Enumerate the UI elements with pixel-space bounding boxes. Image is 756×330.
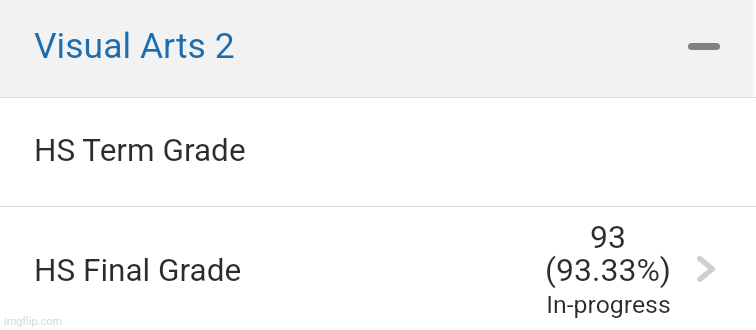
button[interactable]: HS Final Grade (0, 207, 756, 330)
staticText: imgflip.com (4, 315, 63, 328)
staticText: (93.33%) (545, 251, 671, 289)
button[interactable]: Visual Arts 2 (0, 0, 756, 97)
staticText: HS Term Grade (34, 132, 246, 169)
button[interactable]: HS Term Grade (0, 98, 756, 206)
staticText: HS Final Grade (34, 252, 242, 289)
other: Open details (697, 256, 715, 282)
other: Collapse section (688, 43, 720, 50)
staticText: In-progress (546, 290, 671, 319)
staticText: 93 (590, 218, 626, 256)
staticText: Visual Arts 2 (34, 25, 235, 67)
